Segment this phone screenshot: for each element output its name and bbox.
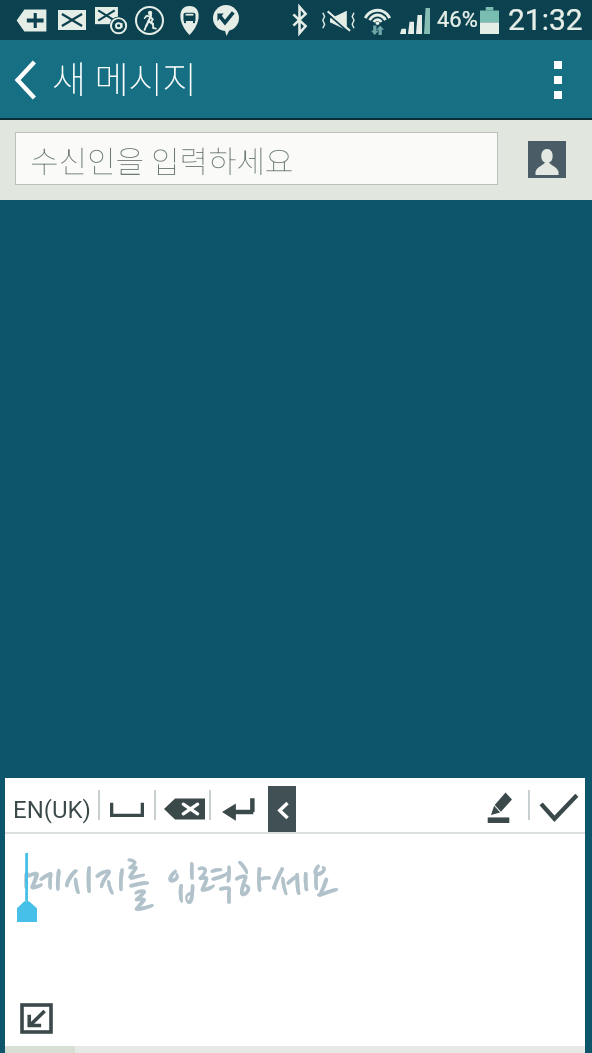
button[interactable]: More options [532, 40, 592, 120]
staticText: 메시지를 입력하세요 [22, 856, 339, 913]
button[interactable]: EN(UK) [8, 778, 96, 832]
button[interactable]: Back [0, 40, 52, 120]
button[interactable]: Contacts [528, 141, 566, 178]
staticText: 46% [437, 7, 478, 33]
button[interactable]: Done [535, 778, 583, 832]
button[interactable]: Previous [268, 786, 296, 832]
button[interactable]: 수신인을 입력하세요 [15, 132, 498, 185]
button[interactable]: Enter [216, 778, 261, 832]
staticText: 수신인을 입력하세요 [30, 137, 294, 182]
button[interactable]: Backspace [159, 778, 209, 832]
button[interactable]: Space [102, 778, 151, 832]
staticText: 21:32 [508, 2, 583, 37]
staticText: 새 메시지 [52, 50, 197, 104]
staticText: EN(UK) [13, 796, 91, 824]
button[interactable]: Hide keyboard [22, 1005, 51, 1032]
button[interactable]: Handwriting mode [474, 778, 522, 832]
